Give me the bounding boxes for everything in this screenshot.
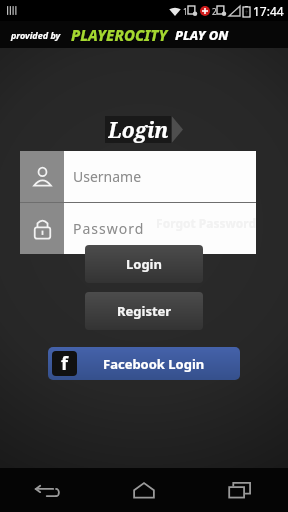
- staticText: Password: [73, 219, 145, 238]
- staticText: f: [61, 351, 68, 376]
- staticText: Facebook Login: [103, 355, 205, 373]
- button[interactable]: f: [48, 347, 240, 380]
- staticText: provided by: [11, 29, 61, 41]
- button[interactable]: Register: [85, 292, 203, 330]
- button[interactable]: Home: [96, 468, 192, 512]
- button[interactable]: Password: [20, 203, 256, 254]
- staticText: PLAY ON: [175, 26, 229, 44]
- button[interactable]: Recent apps: [192, 468, 288, 512]
- staticText: Login: [126, 255, 162, 273]
- button[interactable]: Back: [0, 468, 96, 512]
- staticText: Login: [108, 116, 169, 143]
- button[interactable]: Login: [85, 245, 203, 283]
- staticText: Forgot Password: [156, 215, 256, 231]
- staticText: 2: [212, 6, 217, 17]
- staticText: Register: [117, 302, 172, 320]
- button[interactable]: Username: [20, 151, 256, 202]
- staticText: 17:44: [253, 3, 284, 19]
- staticText: Username: [73, 167, 142, 186]
- staticText: 1: [183, 6, 188, 17]
- button[interactable]: Forgot Password: [138, 213, 256, 233]
- staticText: PLAYEROCITY: [71, 25, 168, 45]
